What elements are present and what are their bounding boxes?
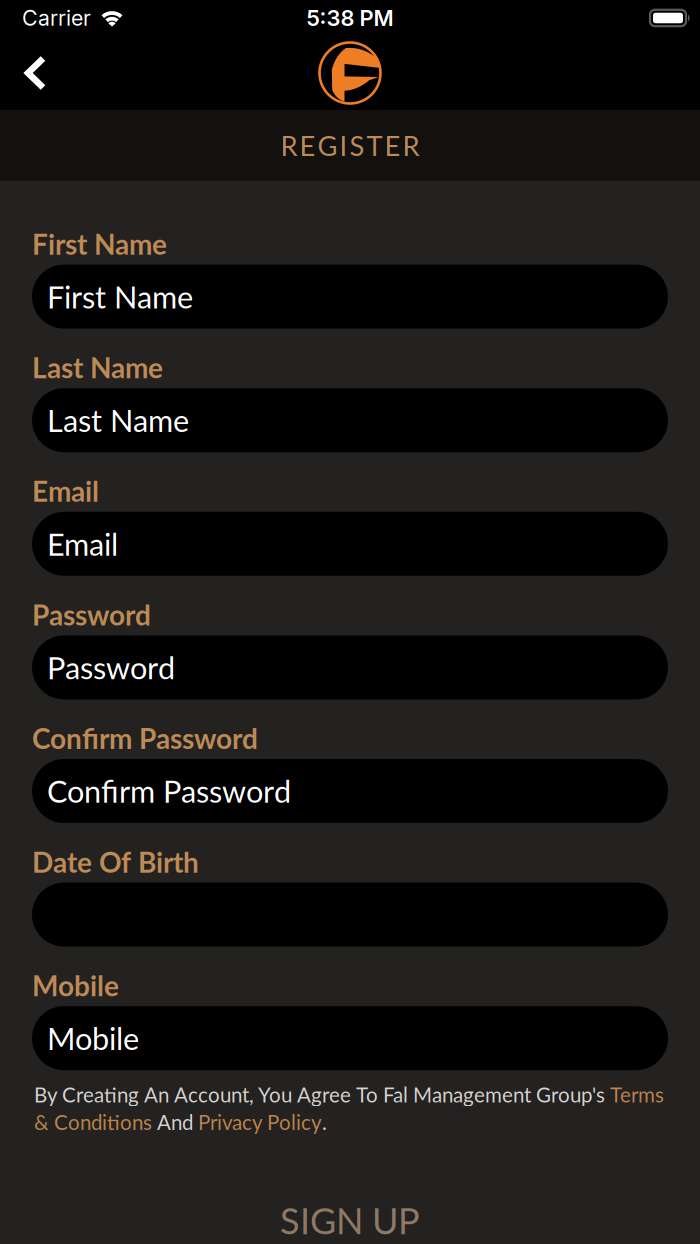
staticText: And — [152, 1110, 198, 1134]
staticText: SIGN UP — [280, 1199, 420, 1242]
staticText: By Creating An Account, You Agree To Fal… — [34, 1082, 610, 1107]
staticText: Date Of Birth — [32, 845, 199, 879]
staticText: Email — [47, 525, 118, 562]
staticText: Carrier — [22, 5, 91, 31]
staticText: . — [322, 1110, 327, 1134]
staticText: Confirm Password — [47, 773, 291, 809]
staticText: Email — [32, 474, 99, 508]
staticText: Mobile — [47, 1020, 139, 1057]
staticText: First Name — [47, 278, 193, 315]
staticText: R E G I S T E R — [280, 129, 419, 162]
staticText: Password — [47, 649, 175, 686]
staticText: & Conditions — [34, 1110, 152, 1134]
staticText: Terms — [610, 1082, 664, 1107]
staticText: Mobile — [32, 969, 119, 1002]
staticText: Confirm Password — [32, 721, 258, 755]
staticText: First Name — [32, 227, 167, 261]
staticText: Privacy Policy — [198, 1110, 322, 1134]
staticText: Last Name — [32, 351, 163, 384]
staticText: Password — [32, 598, 151, 631]
staticText: 5:38 PM — [306, 5, 393, 31]
staticText: Last Name — [47, 402, 189, 439]
